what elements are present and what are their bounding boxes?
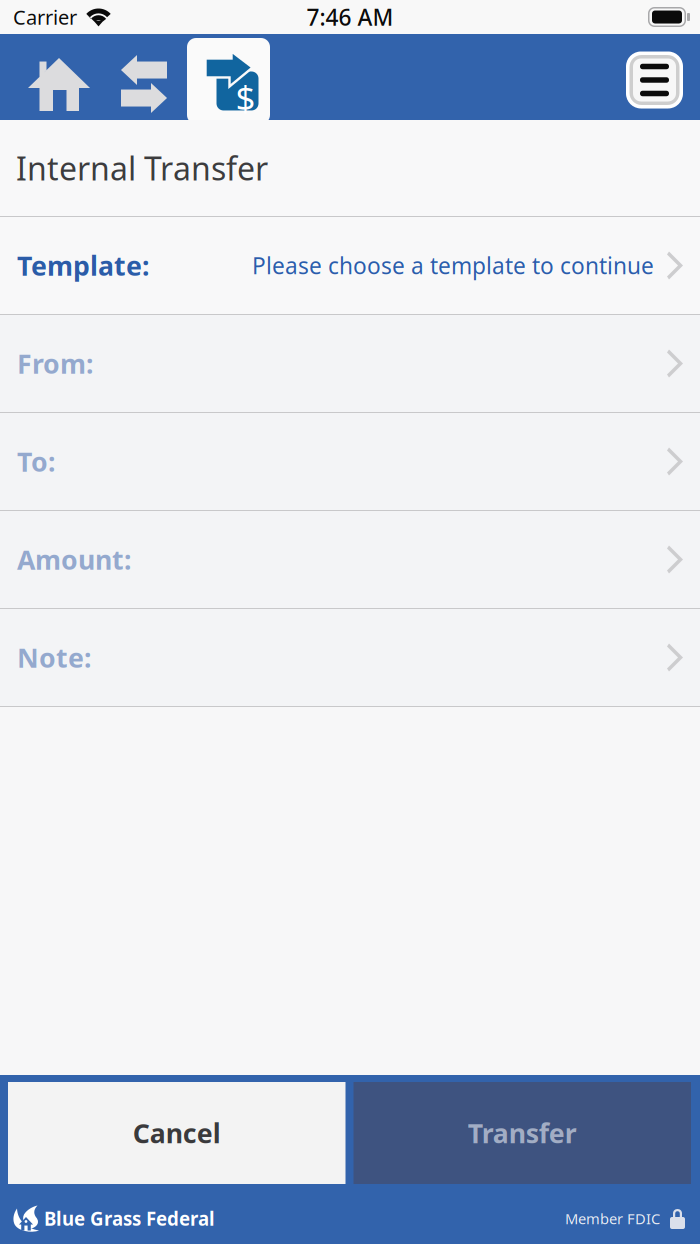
staticText: 7:46 AM — [306, 2, 393, 32]
button[interactable]: Note: — [0, 609, 700, 707]
staticText: $ — [235, 74, 255, 120]
button[interactable]: Home — [0, 34, 121, 120]
staticText: Member FDIC — [565, 1209, 660, 1228]
button[interactable]: From: — [0, 315, 700, 413]
button[interactable]: Accounts — [121, 34, 187, 120]
staticText: Cancel — [133, 1115, 221, 1151]
staticText: Amount: — [17, 542, 131, 577]
staticText: To: — [17, 444, 55, 479]
staticText: Note: — [17, 640, 91, 675]
staticText: From: — [17, 346, 93, 381]
staticText: Carrier — [13, 4, 77, 30]
staticText: Blue Grass Federal — [44, 1206, 215, 1231]
staticText: Internal Transfer — [16, 147, 268, 189]
staticText: Please choose a template to continue — [252, 250, 654, 280]
button[interactable]: Template: — [0, 217, 700, 315]
button[interactable]: To: — [0, 413, 700, 511]
staticText: Template: — [17, 248, 149, 283]
button[interactable]: Amount: — [0, 511, 700, 609]
staticText: Transfer — [468, 1115, 577, 1151]
button[interactable]: Menu — [626, 45, 700, 108]
button[interactable]: Transfers — [187, 30, 270, 124]
button[interactable]: Transfer — [353, 1082, 691, 1184]
button[interactable]: Cancel — [8, 1082, 345, 1184]
